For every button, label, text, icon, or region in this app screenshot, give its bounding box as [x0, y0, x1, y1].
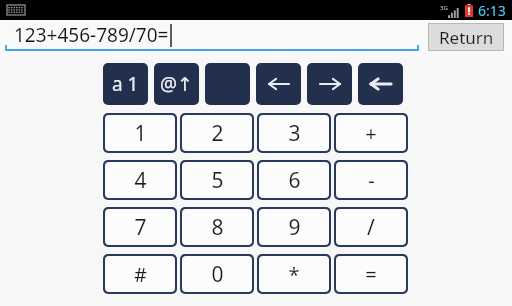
staticText: +	[365, 120, 377, 147]
button[interactable]: 123+456-789/70=	[5, 20, 419, 50]
button[interactable]: Return	[429, 24, 503, 50]
staticText: 8	[211, 213, 224, 242]
button[interactable]: Backspace	[358, 63, 403, 105]
staticText: /	[367, 213, 375, 242]
button[interactable]: 1	[105, 115, 175, 151]
button[interactable]: +	[336, 115, 406, 151]
button[interactable]: 0	[182, 256, 252, 292]
staticText: a 1	[112, 71, 139, 97]
staticText: 6	[288, 166, 301, 195]
button[interactable]: Symbols and shift	[154, 63, 199, 105]
button[interactable]: /	[336, 209, 406, 245]
button[interactable]: Blank key	[205, 63, 250, 105]
staticText: 5	[211, 166, 224, 195]
button[interactable]: =	[336, 256, 406, 292]
button[interactable]: 4	[105, 162, 175, 198]
button[interactable]: 8	[182, 209, 252, 245]
staticText: 9	[288, 213, 301, 242]
staticText: 123+456-789/70=	[14, 22, 169, 48]
staticText: 3G	[440, 4, 448, 12]
button[interactable]: *	[259, 256, 329, 292]
button[interactable]: -	[336, 162, 406, 198]
button[interactable]: 2	[182, 115, 252, 151]
staticText: =	[365, 261, 377, 288]
button[interactable]: 6	[259, 162, 329, 198]
button[interactable]: 3	[259, 115, 329, 151]
staticText: 1	[134, 119, 147, 148]
staticText: -	[368, 167, 375, 194]
staticText: 4	[134, 166, 147, 195]
staticText: 7	[134, 213, 147, 242]
staticText: #	[134, 261, 147, 288]
staticText: @↑	[160, 71, 194, 97]
button[interactable]: Move left	[256, 63, 301, 105]
button[interactable]: Move right	[307, 63, 352, 105]
staticText: *	[288, 261, 300, 288]
button[interactable]: 7	[105, 209, 175, 245]
staticText: 2	[211, 119, 224, 148]
button[interactable]: 5	[182, 162, 252, 198]
button[interactable]: 9	[259, 209, 329, 245]
button[interactable]: Letters and numbers	[103, 63, 148, 105]
staticText: 6:13	[478, 1, 506, 20]
button[interactable]: #	[105, 256, 175, 292]
staticText: 0	[211, 260, 224, 289]
staticText: Return	[439, 26, 494, 49]
staticText: 3	[288, 119, 301, 148]
